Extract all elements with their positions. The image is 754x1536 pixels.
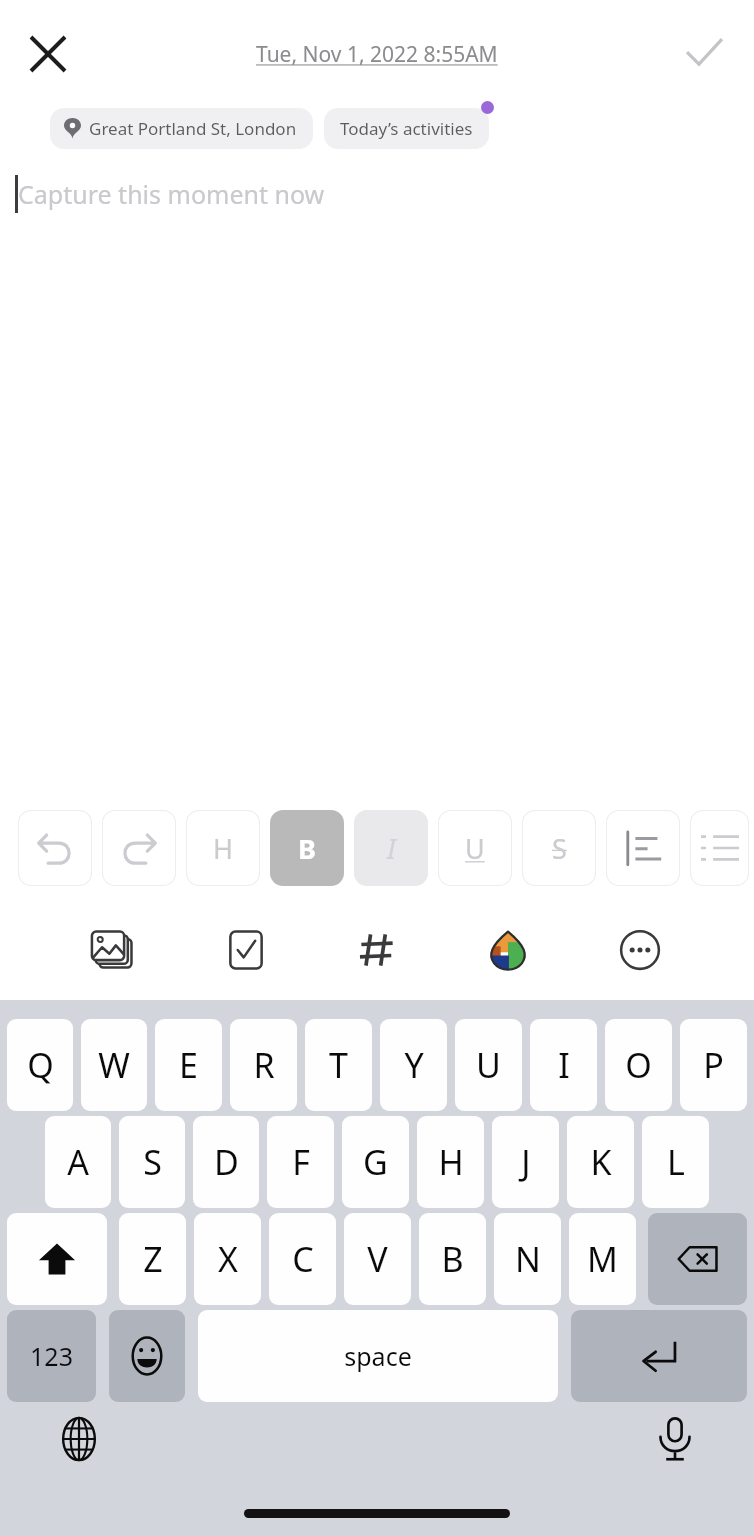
button[interactable]: space: [198, 1310, 558, 1402]
staticText: M: [587, 1236, 618, 1282]
button[interactable]: W: [81, 1019, 147, 1111]
button[interactable]: U: [455, 1019, 522, 1111]
button[interactable]: 123: [7, 1310, 96, 1402]
staticText: Y: [404, 1042, 424, 1088]
staticText: Capture this moment now: [18, 177, 325, 211]
button[interactable]: Change keyboard: [48, 1408, 110, 1470]
button[interactable]: Q: [7, 1019, 73, 1111]
button[interactable]: Great Portland St, London: [50, 108, 313, 149]
staticText: D: [214, 1139, 239, 1185]
button[interactable]: F: [267, 1116, 334, 1208]
staticText: O: [625, 1042, 652, 1088]
button[interactable]: H: [417, 1116, 484, 1208]
button[interactable]: Dictate: [644, 1408, 706, 1470]
button[interactable]: U: [438, 810, 512, 886]
staticText: Tue, Nov 1, 2022 8:55AM: [256, 40, 498, 69]
button[interactable]: Z: [119, 1213, 186, 1305]
button[interactable]: T: [305, 1019, 372, 1111]
button[interactable]: A: [45, 1116, 111, 1208]
button[interactable]: H: [186, 810, 260, 886]
button[interactable]: Y: [380, 1019, 447, 1111]
staticText: V: [367, 1236, 388, 1282]
staticText: T: [329, 1042, 348, 1088]
button[interactable]: Add photo: [77, 913, 151, 987]
button[interactable]: R: [230, 1019, 297, 1111]
staticText: E: [179, 1042, 198, 1088]
button[interactable]: Mood: [471, 913, 545, 987]
button[interactable]: E: [155, 1019, 222, 1111]
button[interactable]: Close: [16, 22, 80, 86]
staticText: I: [558, 1042, 570, 1088]
button[interactable]: I: [530, 1019, 597, 1111]
button[interactable]: Align: [606, 810, 680, 886]
staticText: R: [253, 1042, 275, 1088]
button[interactable]: P: [680, 1019, 747, 1111]
staticText: I: [387, 830, 396, 867]
staticText: G: [363, 1139, 388, 1185]
staticText: L: [667, 1139, 685, 1185]
staticText: F: [292, 1139, 310, 1185]
staticText: Q: [27, 1042, 54, 1088]
staticText: H: [438, 1139, 464, 1185]
button[interactable]: Shift: [7, 1213, 107, 1305]
button[interactable]: G: [342, 1116, 409, 1208]
button[interactable]: X: [194, 1213, 261, 1305]
staticText: B: [441, 1236, 464, 1282]
button[interactable]: B: [270, 810, 344, 886]
button[interactable]: C: [269, 1213, 336, 1305]
staticText: Today’s activities: [340, 117, 473, 140]
staticText: J: [521, 1139, 531, 1185]
staticText: K: [590, 1139, 612, 1185]
button[interactable]: Tue, Nov 1, 2022 8:55AM: [252, 36, 502, 73]
button[interactable]: I: [354, 810, 428, 886]
button[interactable]: D: [193, 1116, 259, 1208]
staticText: Z: [143, 1236, 163, 1282]
staticText: P: [703, 1042, 724, 1088]
staticText: S: [143, 1139, 162, 1185]
staticText: U: [476, 1042, 501, 1088]
staticText: N: [515, 1236, 541, 1282]
button[interactable]: V: [344, 1213, 411, 1305]
staticText: B: [298, 830, 316, 867]
staticText: 123: [30, 1339, 73, 1373]
button[interactable]: S: [522, 810, 596, 886]
staticText: X: [218, 1236, 238, 1282]
button[interactable]: Numbered list: [690, 810, 749, 886]
staticText: space: [344, 1339, 412, 1373]
button[interactable]: O: [605, 1019, 672, 1111]
button[interactable]: Done: [672, 22, 736, 86]
staticText: W: [98, 1042, 130, 1088]
button[interactable]: Today’s activities: [324, 108, 489, 149]
button[interactable]: Add checklist: [209, 913, 283, 987]
staticText: C: [292, 1236, 314, 1282]
button[interactable]: Backspace: [648, 1213, 747, 1305]
staticText: H: [213, 830, 234, 867]
button[interactable]: B: [419, 1213, 486, 1305]
button[interactable]: Emoji: [109, 1310, 185, 1402]
button[interactable]: M: [569, 1213, 636, 1305]
button[interactable]: Undo: [18, 810, 92, 886]
button[interactable]: N: [494, 1213, 561, 1305]
button[interactable]: Redo: [102, 810, 176, 886]
button[interactable]: More options: [603, 913, 677, 987]
staticText: Great Portland St, London: [89, 117, 297, 140]
staticText: A: [67, 1139, 89, 1185]
button[interactable]: S: [119, 1116, 185, 1208]
button[interactable]: K: [567, 1116, 634, 1208]
button[interactable]: Return: [571, 1310, 747, 1402]
button[interactable]: Add tag: [340, 913, 414, 987]
button[interactable]: J: [492, 1116, 559, 1208]
button[interactable]: L: [642, 1116, 709, 1208]
staticText: S: [552, 830, 567, 867]
staticText: U: [465, 830, 485, 867]
